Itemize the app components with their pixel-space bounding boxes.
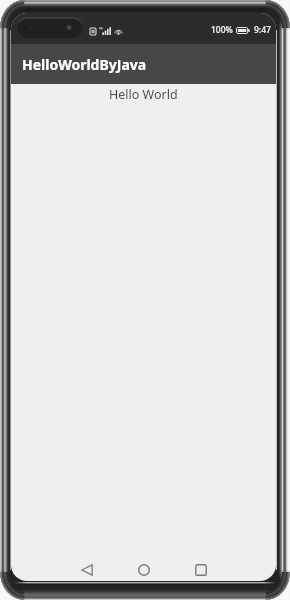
staticText: Hello World	[109, 86, 178, 103]
button[interactable]: HelloWorldByJava	[11, 44, 276, 84]
staticText: HelloWorldByJava	[22, 55, 147, 74]
staticText: 9:47	[254, 24, 271, 36]
button[interactable]: Recents	[183, 559, 219, 581]
staticText: 100%	[211, 24, 233, 36]
button[interactable]: Back	[69, 559, 105, 581]
button[interactable]: Home	[126, 559, 162, 581]
